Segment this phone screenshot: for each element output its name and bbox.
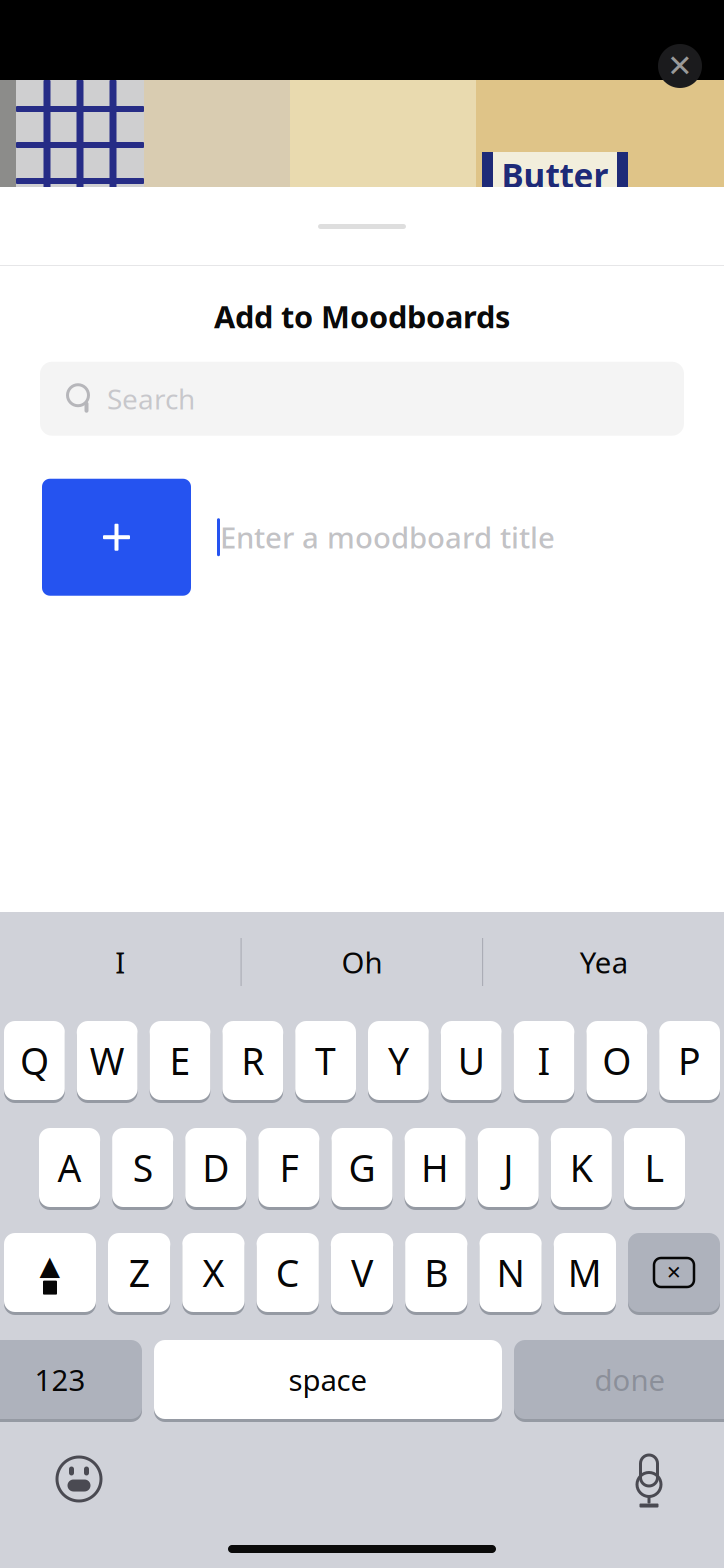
staticText: P bbox=[678, 1036, 701, 1085]
button[interactable]: I bbox=[514, 1021, 574, 1103]
staticText: ✕ bbox=[667, 49, 693, 83]
staticText: done bbox=[594, 1360, 665, 1399]
button[interactable]: space bbox=[154, 1340, 502, 1422]
staticText: A bbox=[58, 1143, 82, 1192]
button[interactable]: K bbox=[551, 1128, 612, 1210]
button[interactable]: U bbox=[441, 1021, 502, 1103]
button[interactable]: Search bbox=[40, 362, 684, 436]
staticText: B bbox=[424, 1248, 448, 1297]
staticText: 123 bbox=[34, 1360, 85, 1399]
staticText: Enter a moodboard title bbox=[220, 518, 555, 557]
staticText: O bbox=[602, 1036, 631, 1085]
staticText: V bbox=[351, 1248, 373, 1297]
staticText: Oh bbox=[341, 942, 382, 981]
staticText: E bbox=[169, 1036, 190, 1085]
button[interactable]: C bbox=[257, 1233, 319, 1315]
staticText: G bbox=[348, 1143, 375, 1192]
button[interactable]: Close bbox=[658, 44, 702, 88]
button[interactable]: B bbox=[405, 1233, 467, 1315]
staticText: Q bbox=[20, 1036, 49, 1085]
button[interactable]: L bbox=[624, 1128, 685, 1210]
button[interactable]: S bbox=[112, 1128, 173, 1210]
button[interactable]: V bbox=[331, 1233, 393, 1315]
staticText: J bbox=[503, 1143, 513, 1192]
button[interactable]: Delete bbox=[628, 1233, 720, 1315]
button[interactable]: I bbox=[0, 912, 241, 1012]
staticText: D bbox=[202, 1143, 229, 1192]
staticText: Search bbox=[107, 380, 195, 417]
button[interactable]: M bbox=[554, 1233, 616, 1315]
button[interactable]: P bbox=[659, 1021, 720, 1103]
button[interactable]: H bbox=[405, 1128, 466, 1210]
button[interactable]: A bbox=[39, 1128, 100, 1210]
staticText: W bbox=[90, 1036, 125, 1085]
button[interactable]: O bbox=[586, 1021, 647, 1103]
button[interactable]: Dictation bbox=[626, 1451, 672, 1507]
staticText: R bbox=[241, 1036, 264, 1085]
staticText: I bbox=[115, 942, 125, 981]
staticText: L bbox=[644, 1143, 664, 1192]
staticText: Yea bbox=[580, 942, 628, 981]
button[interactable]: R bbox=[222, 1021, 283, 1103]
button[interactable]: E bbox=[150, 1021, 210, 1103]
staticText: X bbox=[202, 1248, 224, 1297]
button[interactable]: D bbox=[185, 1128, 246, 1210]
staticText: U bbox=[458, 1036, 485, 1085]
staticText: S bbox=[133, 1143, 153, 1192]
button[interactable]: Emoji keyboard bbox=[52, 1452, 106, 1506]
staticText: space bbox=[288, 1360, 367, 1399]
button[interactable]: Y bbox=[368, 1021, 429, 1103]
staticText: ✕ bbox=[666, 1262, 682, 1283]
button[interactable]: Create new moodboard bbox=[42, 479, 191, 596]
staticText: M bbox=[568, 1248, 602, 1297]
staticText: Add to Moodboards bbox=[214, 296, 510, 337]
button[interactable]: J bbox=[478, 1128, 539, 1210]
button[interactable]: done bbox=[514, 1340, 724, 1422]
button[interactable]: Z bbox=[108, 1233, 170, 1315]
staticText: Y bbox=[388, 1036, 409, 1085]
staticText: T bbox=[315, 1036, 336, 1085]
button[interactable]: Yea bbox=[483, 912, 724, 1012]
button[interactable]: Shift bbox=[4, 1233, 96, 1315]
staticText: ▲ bbox=[39, 1250, 60, 1281]
button[interactable]: T bbox=[295, 1021, 356, 1103]
staticText: Butter bbox=[501, 153, 608, 197]
staticText: C bbox=[276, 1248, 300, 1297]
button[interactable]: G bbox=[331, 1128, 392, 1210]
button[interactable]: Enter a moodboard title bbox=[191, 479, 694, 596]
staticText: F bbox=[279, 1143, 298, 1192]
button[interactable]: N bbox=[479, 1233, 542, 1315]
button[interactable]: F bbox=[258, 1128, 319, 1210]
staticText: I bbox=[537, 1036, 550, 1085]
button[interactable]: Oh bbox=[242, 912, 482, 1012]
button[interactable]: 123 bbox=[0, 1340, 142, 1422]
staticText: K bbox=[570, 1143, 593, 1192]
button[interactable]: X bbox=[182, 1233, 245, 1315]
button[interactable]: W bbox=[77, 1021, 138, 1103]
staticText: Z bbox=[129, 1248, 150, 1297]
staticText: N bbox=[497, 1248, 525, 1297]
button[interactable]: Q bbox=[4, 1021, 65, 1103]
staticText: H bbox=[421, 1143, 449, 1192]
